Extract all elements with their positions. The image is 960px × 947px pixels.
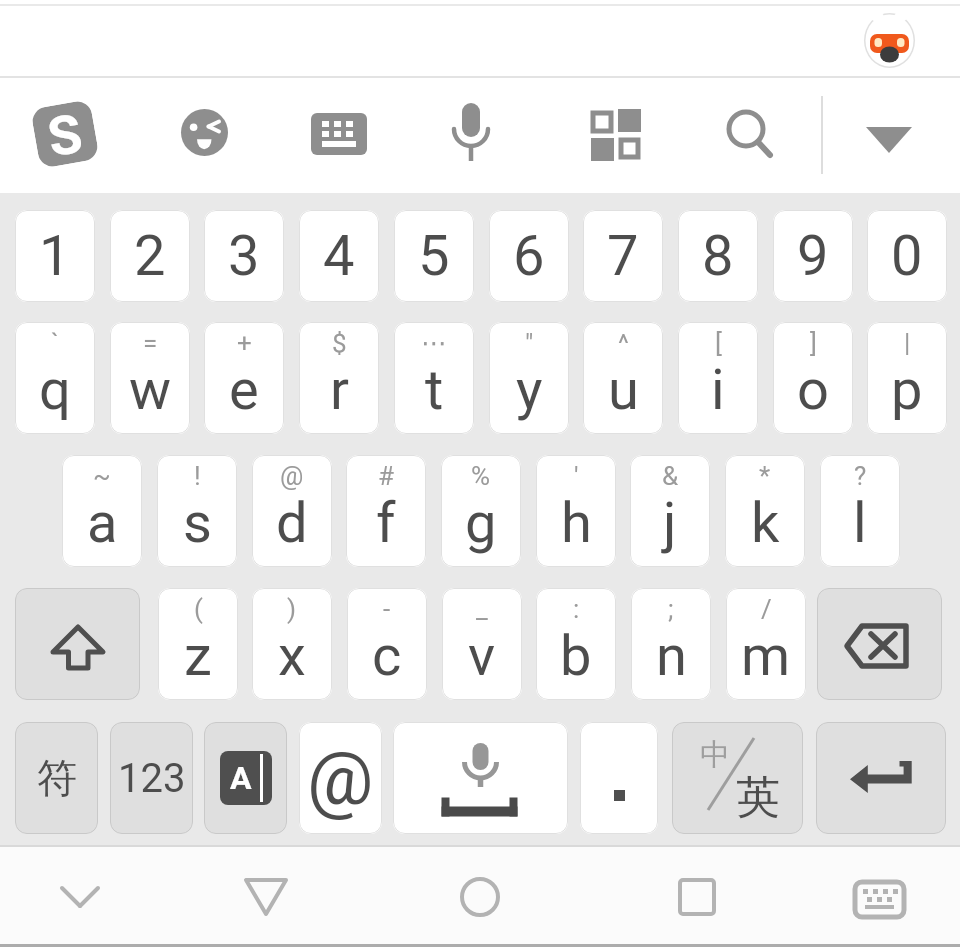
button[interactable]: [244, 878, 288, 916]
button[interactable]: :: [536, 588, 616, 700]
button[interactable]: ⋯: [394, 322, 474, 434]
button[interactable]: 5: [394, 210, 474, 302]
button[interactable]: [393, 722, 568, 834]
button[interactable]: [453, 103, 489, 165]
button[interactable]: 9: [773, 210, 853, 302]
button[interactable]: 0: [867, 210, 947, 302]
button[interactable]: [181, 109, 228, 156]
staticText: k: [751, 490, 780, 556]
staticText: !: [194, 461, 201, 491]
button[interactable]: 8: [678, 210, 758, 302]
button[interactable]: [15, 588, 140, 700]
button[interactable]: [722, 106, 778, 162]
button[interactable]: (: [158, 588, 238, 700]
button[interactable]: 中: [672, 722, 803, 834]
button[interactable]: [591, 109, 641, 161]
button[interactable]: &: [630, 455, 710, 567]
staticText: u: [608, 357, 639, 423]
staticText: 5: [418, 223, 450, 289]
button[interactable]: A: [204, 722, 287, 834]
staticText: A: [230, 759, 252, 797]
staticText: l: [853, 490, 867, 556]
staticText: c: [372, 623, 402, 689]
button[interactable]: +: [204, 322, 284, 434]
staticText: _: [476, 594, 488, 624]
staticText: |: [904, 328, 911, 358]
staticText: z: [184, 623, 212, 689]
staticText: $: [332, 328, 347, 358]
button[interactable]: -: [347, 588, 427, 700]
staticText: :: [573, 594, 580, 624]
staticText: g: [465, 490, 497, 556]
button[interactable]: $: [299, 322, 379, 434]
button[interactable]: 123: [110, 722, 193, 834]
staticText: a: [87, 490, 118, 556]
button[interactable]: #: [346, 455, 426, 567]
button[interactable]: 符: [15, 722, 98, 834]
staticText: d: [276, 490, 308, 556]
button[interactable]: [816, 722, 946, 834]
staticText: 9: [797, 223, 829, 289]
staticText: m: [741, 623, 791, 689]
staticText: ': [574, 461, 579, 491]
button[interactable]: [853, 880, 906, 919]
staticText: w: [129, 357, 172, 423]
button[interactable]: [580, 722, 658, 834]
staticText: f: [376, 490, 396, 556]
button[interactable]: %: [441, 455, 521, 567]
staticText: o: [797, 357, 829, 423]
staticText: 2: [134, 223, 166, 289]
button[interactable]: [817, 588, 942, 700]
button[interactable]: |: [867, 322, 947, 434]
staticText: 8: [702, 223, 734, 289]
button[interactable]: [864, 12, 915, 68]
staticText: v: [468, 623, 496, 689]
button[interactable]: ;: [631, 588, 711, 700]
staticText: #: [378, 461, 395, 491]
button[interactable]: /: [726, 588, 806, 700]
staticText: q: [39, 357, 71, 423]
button[interactable]: ): [252, 588, 332, 700]
button[interactable]: ^: [583, 322, 663, 434]
button[interactable]: ]: [773, 322, 853, 434]
button[interactable]: `: [15, 322, 95, 434]
staticText: h: [561, 490, 592, 556]
button[interactable]: [678, 878, 716, 916]
button[interactable]: ": [489, 322, 569, 434]
button[interactable]: 3: [204, 210, 284, 302]
button[interactable]: ~: [62, 455, 142, 567]
button[interactable]: [460, 877, 500, 917]
staticText: ": [525, 328, 534, 358]
staticText: 中: [700, 736, 730, 774]
staticText: y: [516, 357, 543, 423]
staticText: %: [471, 461, 491, 491]
button[interactable]: @: [299, 722, 382, 834]
button[interactable]: [866, 127, 912, 155]
button[interactable]: 7: [583, 210, 663, 302]
button[interactable]: [60, 877, 100, 917]
staticText: &: [662, 461, 679, 491]
button[interactable]: ': [536, 455, 616, 567]
button[interactable]: !: [157, 455, 237, 567]
staticText: ): [287, 594, 297, 624]
button[interactable]: [: [678, 322, 758, 434]
staticText: *: [759, 461, 771, 491]
button[interactable]: ?: [820, 455, 900, 567]
button[interactable]: _: [442, 588, 522, 700]
staticText: r: [330, 357, 349, 423]
button[interactable]: *: [725, 455, 805, 567]
button[interactable]: 1: [15, 210, 95, 302]
button[interactable]: @: [252, 455, 332, 567]
button[interactable]: [311, 113, 367, 155]
button[interactable]: =: [110, 322, 190, 434]
staticText: 123: [118, 755, 186, 802]
staticText: x: [278, 623, 306, 689]
staticText: p: [891, 357, 923, 423]
staticText: 1: [39, 223, 71, 289]
button[interactable]: 4: [299, 210, 379, 302]
button[interactable]: 6: [489, 210, 569, 302]
button[interactable]: S: [35, 104, 95, 164]
staticText: [: [715, 328, 722, 358]
staticText: @: [307, 735, 374, 822]
button[interactable]: 2: [110, 210, 190, 302]
